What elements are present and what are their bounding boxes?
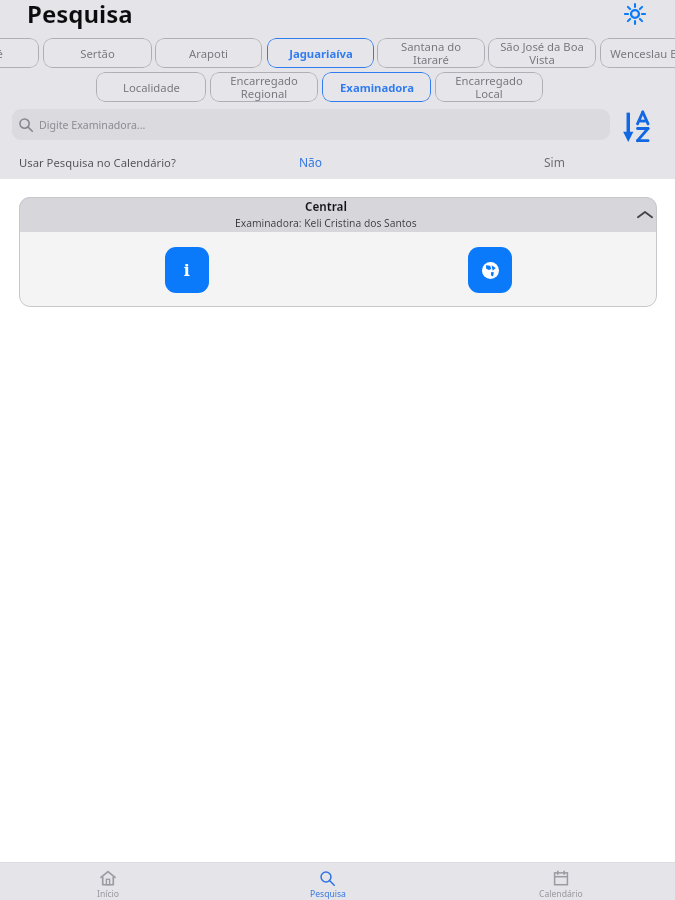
staticText: Pesquisa bbox=[310, 888, 346, 900]
button[interactable]: Não bbox=[271, 152, 351, 172]
staticText: Digite Examinadora... bbox=[39, 118, 146, 132]
button[interactable]: São José da Boa Vista bbox=[488, 38, 596, 68]
button[interactable]: Localidade bbox=[96, 72, 206, 102]
button[interactable]: Information bbox=[165, 247, 209, 293]
button[interactable]: Digite Examinadora... bbox=[12, 109, 610, 140]
button[interactable]: Calendário bbox=[503, 866, 618, 900]
button[interactable]: Itararé bbox=[0, 38, 39, 68]
staticText: Sim bbox=[544, 154, 565, 170]
staticText: Usar Pesquisa no Calendário? bbox=[19, 155, 176, 170]
other: Collapse bbox=[633, 197, 657, 232]
button[interactable]: Sort A to Z bbox=[620, 109, 654, 143]
button[interactable]: Sertão bbox=[43, 38, 152, 68]
staticText: Localidade bbox=[123, 80, 180, 95]
staticText: Itararé bbox=[0, 46, 3, 61]
button[interactable]: Jaguariaíva bbox=[267, 38, 374, 68]
staticText: Início bbox=[97, 888, 119, 900]
button[interactable]: Central bbox=[19, 197, 657, 232]
staticText: Não bbox=[299, 154, 323, 170]
staticText: Pesquisa bbox=[27, 0, 133, 30]
button[interactable]: Encarregado Local bbox=[435, 72, 543, 102]
staticText: Santana do Itararé bbox=[401, 39, 461, 68]
staticText: Jaguariaíva bbox=[289, 46, 353, 61]
button[interactable]: Examinadora bbox=[322, 72, 431, 102]
button[interactable]: Wenceslau Braz bbox=[600, 38, 675, 68]
button[interactable]: Map bbox=[468, 247, 512, 293]
button[interactable]: Pesquisa bbox=[270, 866, 385, 900]
staticText: Calendário bbox=[539, 888, 583, 900]
staticText: Examinadora: Keli Cristina dos Santos bbox=[235, 216, 417, 230]
button[interactable]: Santana do Itararé bbox=[377, 38, 485, 68]
staticText: i bbox=[184, 259, 190, 281]
button[interactable]: Brightness bbox=[621, 0, 649, 28]
button[interactable]: Arapoti bbox=[155, 38, 262, 68]
staticText: Sertão bbox=[80, 46, 115, 61]
staticText: São José da Boa Vista bbox=[500, 39, 584, 68]
staticText: Arapoti bbox=[189, 46, 228, 61]
staticText: Wenceslau Braz bbox=[610, 46, 675, 61]
staticText: Examinadora bbox=[340, 80, 414, 95]
staticText: Encarregado Local bbox=[455, 73, 523, 102]
button[interactable]: Encarregado Regional bbox=[210, 72, 318, 102]
staticText: Central bbox=[305, 199, 347, 215]
staticText: Encarregado Regional bbox=[230, 73, 298, 102]
button[interactable]: Início bbox=[50, 866, 165, 900]
button[interactable]: Sim bbox=[514, 152, 594, 172]
